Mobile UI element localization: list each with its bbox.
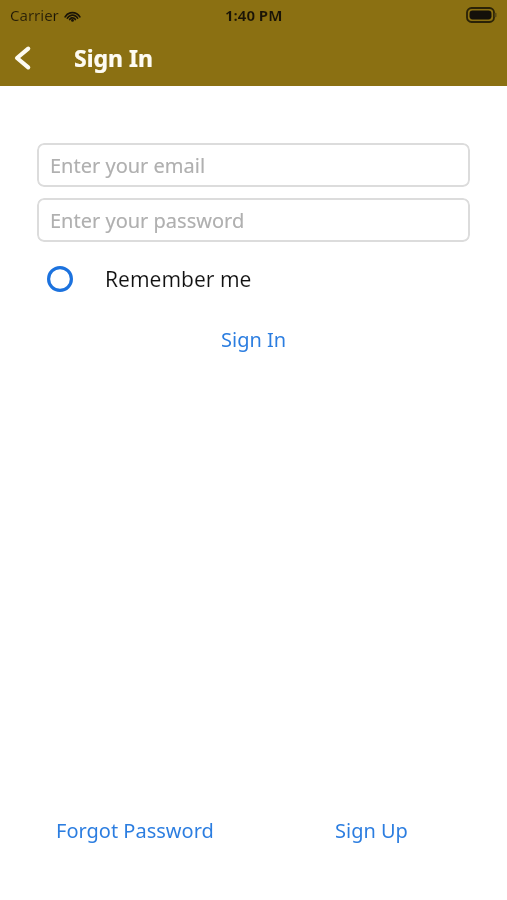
- staticText: Carrier: [10, 5, 59, 25]
- staticText: Sign Up: [335, 817, 408, 844]
- button[interactable]: Back: [0, 35, 46, 81]
- button[interactable]: Enter your password: [37, 198, 470, 242]
- staticText: 1:40 PM: [225, 5, 283, 25]
- button[interactable]: Sign In: [0, 326, 507, 353]
- button[interactable]: Sign Up: [331, 811, 412, 850]
- staticText: Enter your password: [50, 207, 245, 234]
- staticText: Remember me: [105, 265, 252, 294]
- button[interactable]: Forgot Password: [52, 811, 218, 850]
- staticText: Enter your email: [50, 152, 206, 179]
- staticText: Sign In: [74, 42, 153, 73]
- button[interactable]: Enter your email: [37, 143, 470, 187]
- staticText: Forgot Password: [56, 817, 214, 844]
- staticText: Sign In: [221, 326, 287, 353]
- button[interactable]: Remember me: [37, 258, 252, 300]
